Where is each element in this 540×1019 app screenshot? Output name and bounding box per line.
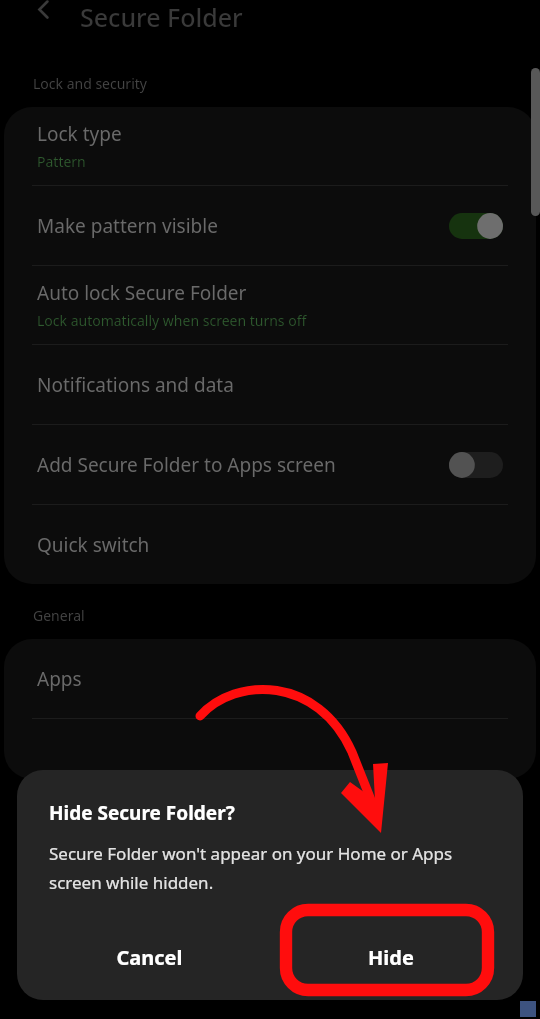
staticText: Apps (37, 666, 82, 692)
staticText: Secure Folder won't appear on your Home … (49, 842, 493, 894)
staticText: Hide Secure Folder? (49, 800, 235, 826)
staticText: Make pattern visible (37, 213, 218, 239)
staticText: Auto lock Secure Folder (37, 280, 247, 306)
staticText: Cancel (116, 944, 183, 971)
staticText: Lock type (37, 121, 122, 147)
button[interactable]: Notifications and data (4, 345, 536, 424)
staticText: Pattern (37, 152, 86, 171)
button[interactable]: Cancel (29, 920, 270, 994)
button[interactable]: Add Secure Folder to Apps screen (4, 425, 536, 504)
button[interactable]: Lock type (4, 107, 536, 185)
staticText: Quick switch (37, 532, 150, 558)
staticText: General (33, 606, 85, 625)
button[interactable]: Auto lock Secure Folder (4, 266, 536, 344)
staticText: Lock and security (33, 74, 147, 93)
button[interactable]: Toggle off (449, 450, 503, 480)
staticText: Hide (368, 944, 414, 971)
staticText: Secure Folder (80, 0, 243, 34)
button[interactable]: Toggle on (449, 211, 503, 241)
button[interactable]: Quick switch (4, 505, 536, 584)
button[interactable]: Hide (270, 920, 511, 994)
button[interactable]: Make pattern visible (4, 186, 536, 265)
staticText: Lock automatically when screen turns off (37, 311, 307, 330)
button[interactable]: Apps (4, 639, 536, 718)
button[interactable]: Back (26, 0, 60, 34)
staticText: Add Secure Folder to Apps screen (37, 452, 336, 478)
staticText: Notifications and data (37, 372, 234, 398)
